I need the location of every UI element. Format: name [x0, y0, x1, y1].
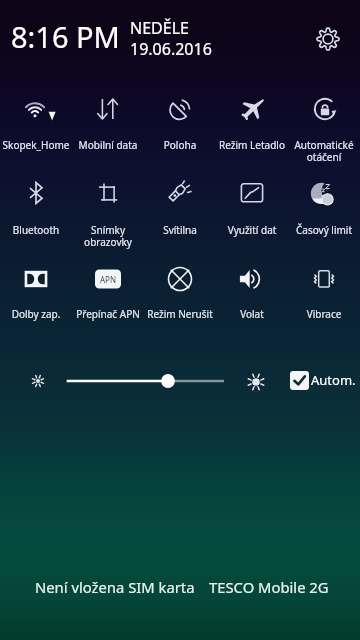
staticText: Autom.: [311, 371, 356, 389]
button[interactable]: Dolby zap.: [0, 255, 72, 337]
staticText: Automatické otáčení: [288, 138, 360, 164]
button[interactable]: Lower brightness: [27, 370, 49, 392]
staticText: Vibrace: [288, 307, 360, 321]
button[interactable]: Settings: [306, 17, 350, 61]
staticText: Svítilna: [144, 223, 216, 237]
button[interactable]: Režim Nerušit: [144, 255, 216, 337]
staticText: TESCO Mobile 2G: [209, 577, 329, 597]
button[interactable]: Raise brightness: [245, 371, 267, 393]
staticText: Snímky obrazovky: [72, 223, 144, 249]
button[interactable]: Svítilna: [144, 169, 216, 251]
button[interactable]: Volat: [216, 255, 288, 337]
staticText: Poloha: [144, 138, 216, 152]
staticText: 8:16 PM: [11, 17, 120, 56]
button[interactable]: Automatické otáčení: [288, 85, 360, 167]
staticText: Bluetooth: [0, 223, 72, 237]
staticText: Mobilní data: [72, 138, 144, 152]
button[interactable]: Režim Letadlo: [216, 85, 288, 167]
button[interactable]: APN: [72, 255, 144, 337]
staticText: Režim Nerušit: [144, 307, 216, 321]
button[interactable]: Bluetooth: [0, 169, 72, 251]
staticText: APN: [100, 274, 117, 285]
staticText: Využití dat: [216, 223, 288, 237]
staticText: Skopek_Home: [0, 138, 72, 152]
button[interactable]: Brightness slider: [56, 368, 236, 394]
button[interactable]: Mobilní data: [72, 85, 144, 167]
staticText: Přepínač APN: [72, 307, 144, 321]
button[interactable]: Autom.: [290, 369, 360, 391]
button[interactable]: Vibrace: [288, 255, 360, 337]
button[interactable]: Časový limit: [288, 169, 360, 251]
staticText: Dolby zap.: [0, 307, 72, 321]
staticText: Není vložena SIM karta: [35, 577, 195, 597]
button[interactable]: Snímky obrazovky: [72, 169, 144, 251]
button[interactable]: Skopek_Home: [0, 85, 72, 167]
staticText: Časový limit: [288, 223, 360, 237]
staticText: NEDĚLE: [130, 17, 189, 39]
button[interactable]: Poloha: [144, 85, 216, 167]
staticText: 19.06.2016: [130, 38, 212, 60]
staticText: Režim Letadlo: [216, 138, 288, 152]
button[interactable]: Využití dat: [216, 169, 288, 251]
staticText: Volat: [216, 307, 288, 321]
